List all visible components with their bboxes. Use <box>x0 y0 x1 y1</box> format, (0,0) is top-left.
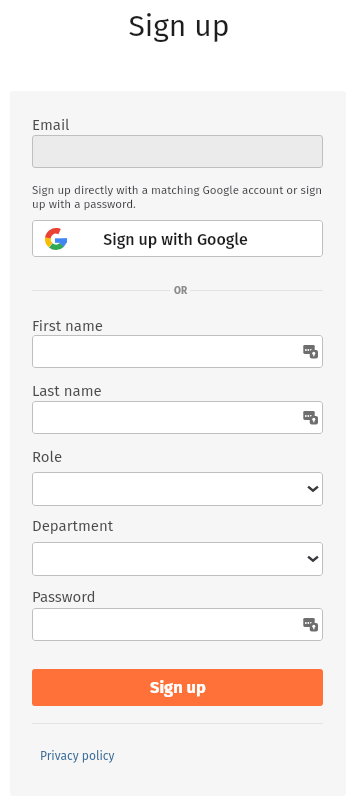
staticText: Department <box>32 517 114 535</box>
button[interactable]: Email address <box>32 135 323 168</box>
staticText: Email <box>32 116 70 134</box>
staticText: Sign up directly with a matching Google … <box>32 183 352 211</box>
staticText: Last name <box>32 382 102 400</box>
staticText: OR <box>174 285 188 297</box>
staticText: Sign up with Google <box>67 230 284 249</box>
staticText: Role <box>32 448 63 466</box>
staticText: Sign up <box>150 678 206 698</box>
button[interactable]: Privacy policy <box>40 749 115 763</box>
button[interactable]: Department <box>32 542 323 576</box>
button[interactable]: Sign up <box>32 669 323 706</box>
button[interactable]: Role <box>32 472 323 506</box>
staticText: First name <box>32 317 104 335</box>
button[interactable]: Sign up with Google <box>32 220 323 257</box>
staticText: Password <box>32 588 96 606</box>
button[interactable]: First name <box>32 335 323 368</box>
button[interactable]: Password <box>32 608 323 641</box>
button[interactable]: Last name <box>32 401 323 434</box>
staticText: Sign up <box>0 8 358 44</box>
